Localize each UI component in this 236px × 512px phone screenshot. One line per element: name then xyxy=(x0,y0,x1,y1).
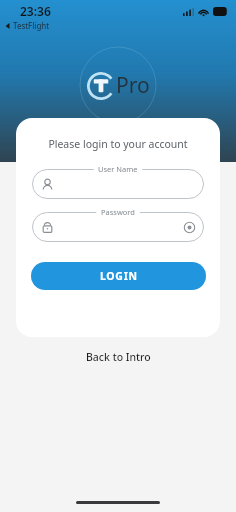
staticText: Please login to your account xyxy=(48,137,188,151)
staticText: User Name xyxy=(98,164,138,174)
button[interactable]: Toggle password visibility xyxy=(183,221,196,234)
button[interactable]: LOGIN xyxy=(31,262,206,290)
staticText: Back to Intro xyxy=(86,350,151,364)
staticText: Password xyxy=(101,207,135,217)
staticText: LOGIN xyxy=(100,269,138,283)
button[interactable]: Back to Intro xyxy=(70,346,167,368)
staticText: 23:36 xyxy=(20,3,51,19)
button[interactable]: User Name xyxy=(32,169,204,199)
staticText: TestFlight xyxy=(13,20,50,31)
staticText: Pro xyxy=(116,71,150,100)
button[interactable]: Toggle password visibility xyxy=(32,212,204,242)
